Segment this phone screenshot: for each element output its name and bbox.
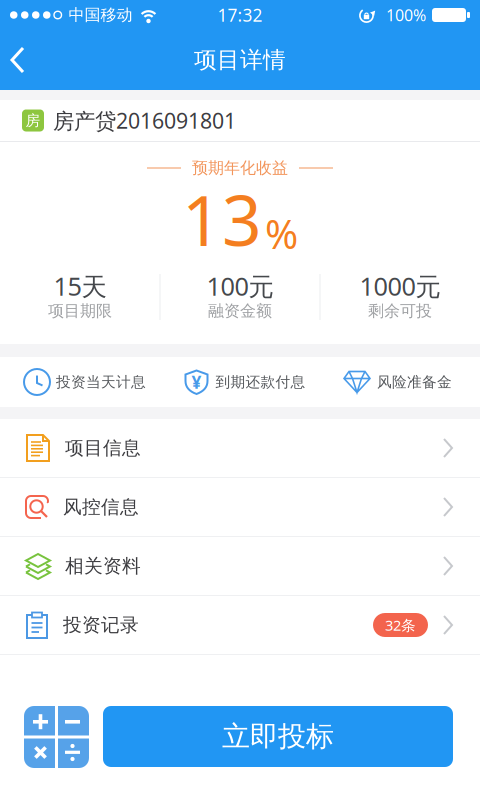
button[interactable]: Back [0,30,42,90]
staticText: 风控信息 [63,495,139,518]
staticText: 剩余可投 [368,301,432,321]
staticText: 13 [182,173,262,265]
staticText: ¥ [191,370,201,393]
staticText: 预期年化收益 [192,158,288,178]
staticText: 项目详情 [194,46,286,74]
staticText: 立即投标 [222,719,334,754]
staticText: 100元 [206,269,273,303]
staticText: 项目期限 [48,301,112,321]
staticText: 相关资料 [65,554,141,577]
staticText: 投资记录 [63,613,139,636]
button[interactable]: 立即投标 [103,706,453,767]
staticText: 1000元 [359,269,440,303]
button[interactable]: 投资记录 [0,596,480,654]
staticText: 到期还款付息 [215,373,305,391]
staticText: 融资金额 [208,301,272,321]
staticText: 房产贷2016091801 [53,106,236,135]
staticText: 中国移动 [68,5,132,25]
staticText: % [265,207,298,260]
staticText: 100% [386,4,426,26]
button[interactable]: 相关资料 [0,537,480,595]
staticText: 15天 [53,269,106,303]
button[interactable]: 项目信息 [0,419,480,477]
staticText: 风险准备金 [377,373,452,391]
staticText: 项目信息 [65,436,141,459]
staticText: 32条 [385,615,416,635]
button[interactable]: Calculator [24,706,89,768]
staticText: 房 [25,111,40,129]
staticText: 17:32 [217,3,262,26]
staticText: 投资当天计息 [56,373,146,391]
button[interactable]: 风控信息 [0,478,480,536]
